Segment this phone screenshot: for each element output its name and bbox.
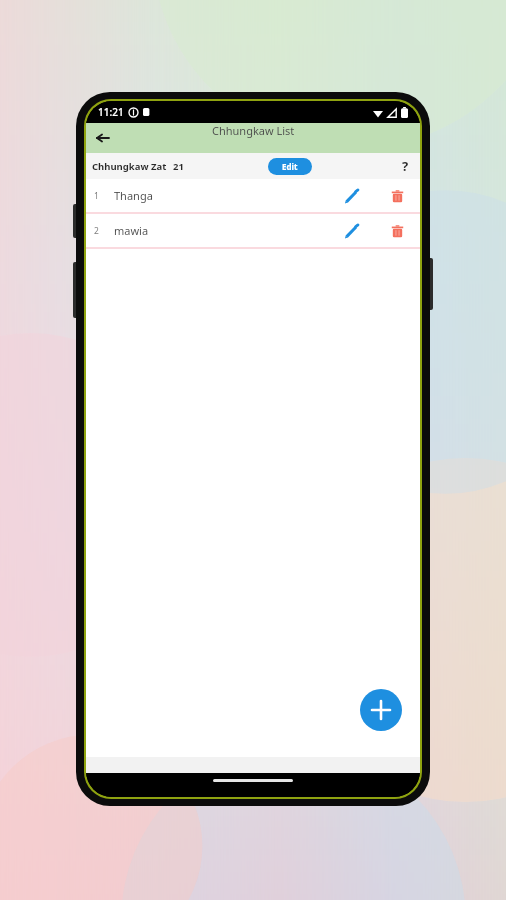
staticText: 1 [94, 190, 99, 202]
button[interactable]: Back [90, 125, 116, 151]
staticText: ? [402, 157, 409, 175]
button[interactable]: 2 [86, 214, 420, 247]
staticText: Edit [282, 161, 298, 172]
button[interactable]: Edit mawia [338, 218, 364, 244]
button[interactable]: Edit [268, 158, 312, 175]
button[interactable]: Edit Thanga [338, 183, 364, 209]
button[interactable]: Delete Thanga [384, 183, 410, 209]
staticText: Chhungkaw Zat [92, 160, 167, 173]
staticText: Chhungkaw List [212, 123, 295, 138]
button[interactable]: Add [360, 689, 402, 731]
staticText: 11:21 [98, 105, 124, 119]
button[interactable]: Help [396, 157, 414, 175]
staticText: 2 [94, 225, 99, 237]
staticText: 21 [173, 160, 184, 173]
staticText: Thanga [114, 188, 153, 203]
button[interactable]: Delete mawia [384, 218, 410, 244]
button[interactable]: 1 [86, 179, 420, 212]
staticText: mawia [114, 223, 149, 238]
